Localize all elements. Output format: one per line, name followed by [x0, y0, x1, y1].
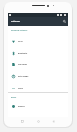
staticText: Bluetooth: [18, 52, 28, 55]
staticText: Data usage: [18, 75, 29, 78]
staticText: More: [18, 87, 23, 90]
button[interactable]: Display: [8, 100, 68, 112]
button[interactable]: Data usage: [8, 70, 68, 82]
staticText: SIM cards: [18, 63, 27, 66]
button[interactable]: Wi-Fi: [8, 35, 68, 47]
staticText: Device: [11, 96, 17, 98]
staticText: Display: [18, 105, 25, 108]
button[interactable]: Home: [37, 120, 40, 123]
button[interactable]: Search: [63, 20, 66, 23]
button[interactable]: Back: [52, 120, 55, 123]
button[interactable]: Recents: [21, 120, 24, 123]
staticText: Settings: [11, 20, 20, 23]
staticText: Wireless & networks: [11, 29, 28, 31]
button[interactable]: Bluetooth: [8, 47, 68, 59]
button[interactable]: More: [8, 82, 68, 94]
staticText: Wi-Fi: [18, 40, 23, 43]
button[interactable]: SIM cards: [8, 58, 68, 70]
